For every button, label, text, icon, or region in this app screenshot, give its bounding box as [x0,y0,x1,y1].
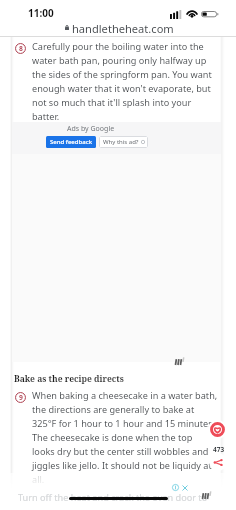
button[interactable]: Share [209,453,227,471]
staticText: Turn off the heat and crack the oven doo… [18,491,208,503]
staticText: handletheheat.com [72,21,174,36]
staticText: Ads by Google [67,124,115,134]
staticText: 8 [19,44,23,53]
button[interactable]: Close ad [182,485,188,491]
staticText: When baking a cheesecake in a water bath… [32,389,218,486]
staticText: 473 [213,445,225,454]
staticText: Send feedback [50,138,92,146]
button[interactable]: Why this ad? [99,136,148,148]
staticText: 9 [19,393,23,402]
button[interactable]: Like [208,420,227,439]
button[interactable]: Send feedback [46,136,96,148]
staticText: 11:00 [28,6,54,20]
staticText: Carefully pour the boiling water into th… [32,40,212,123]
staticText: Why this ad? [103,138,139,146]
staticText: Bake as the recipe directs [14,373,124,385]
